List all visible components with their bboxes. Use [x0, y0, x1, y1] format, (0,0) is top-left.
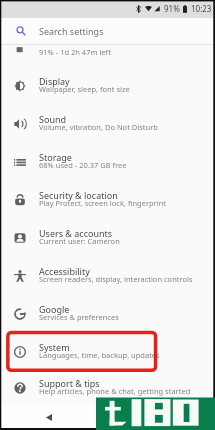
staticText: Storage: [39, 151, 72, 163]
staticText: Services & preferences: [39, 312, 119, 322]
staticText: Play Protect, screen lock, fingerprint: [39, 198, 166, 208]
staticText: 10:23: [191, 3, 212, 14]
button[interactable]: Security & location: [0, 181, 215, 219]
button[interactable]: Accessibility: [0, 257, 215, 295]
button[interactable]: Storage: [0, 143, 215, 181]
staticText: Search settings: [39, 25, 104, 37]
staticText: Security & location: [39, 189, 118, 201]
button[interactable]: Sound: [0, 105, 215, 143]
button[interactable]: Display: [0, 67, 215, 105]
staticText: Screen readers, display, interaction con…: [39, 274, 193, 284]
button[interactable]: Google: [0, 295, 215, 333]
staticText: Sound: [39, 113, 67, 125]
staticText: Users & accounts: [39, 227, 113, 239]
staticText: 91%: [164, 3, 180, 14]
staticText: Wallpaper, sleep, font size: [39, 84, 130, 94]
button[interactable]: System: [0, 333, 215, 371]
staticText: Display: [39, 75, 70, 87]
button[interactable]: 91% - 1d 2h 47m left: [0, 45, 215, 67]
staticText: Support & tips: [39, 377, 100, 389]
staticText: Google: [39, 303, 70, 315]
staticText: Current user: Cameron: [39, 236, 120, 246]
staticText: Languages, time, backup, updates: [39, 350, 160, 360]
button[interactable]: Users & accounts: [0, 219, 215, 257]
staticText: 91% - 1d 2h 47m left: [39, 47, 111, 57]
staticText: System: [39, 341, 70, 353]
button[interactable]: Back: [38, 407, 59, 428]
staticText: Help articles, phone & chat, getting sta…: [39, 386, 191, 396]
staticText: Accessibility: [39, 265, 90, 277]
staticText: Volume, vibration, Do Not Disturb: [39, 122, 158, 132]
button[interactable]: Support & tips: [0, 371, 215, 404]
staticText: 68% used - 20.37 GB free: [39, 160, 127, 170]
button[interactable]: Search settings: [0, 18, 215, 44]
